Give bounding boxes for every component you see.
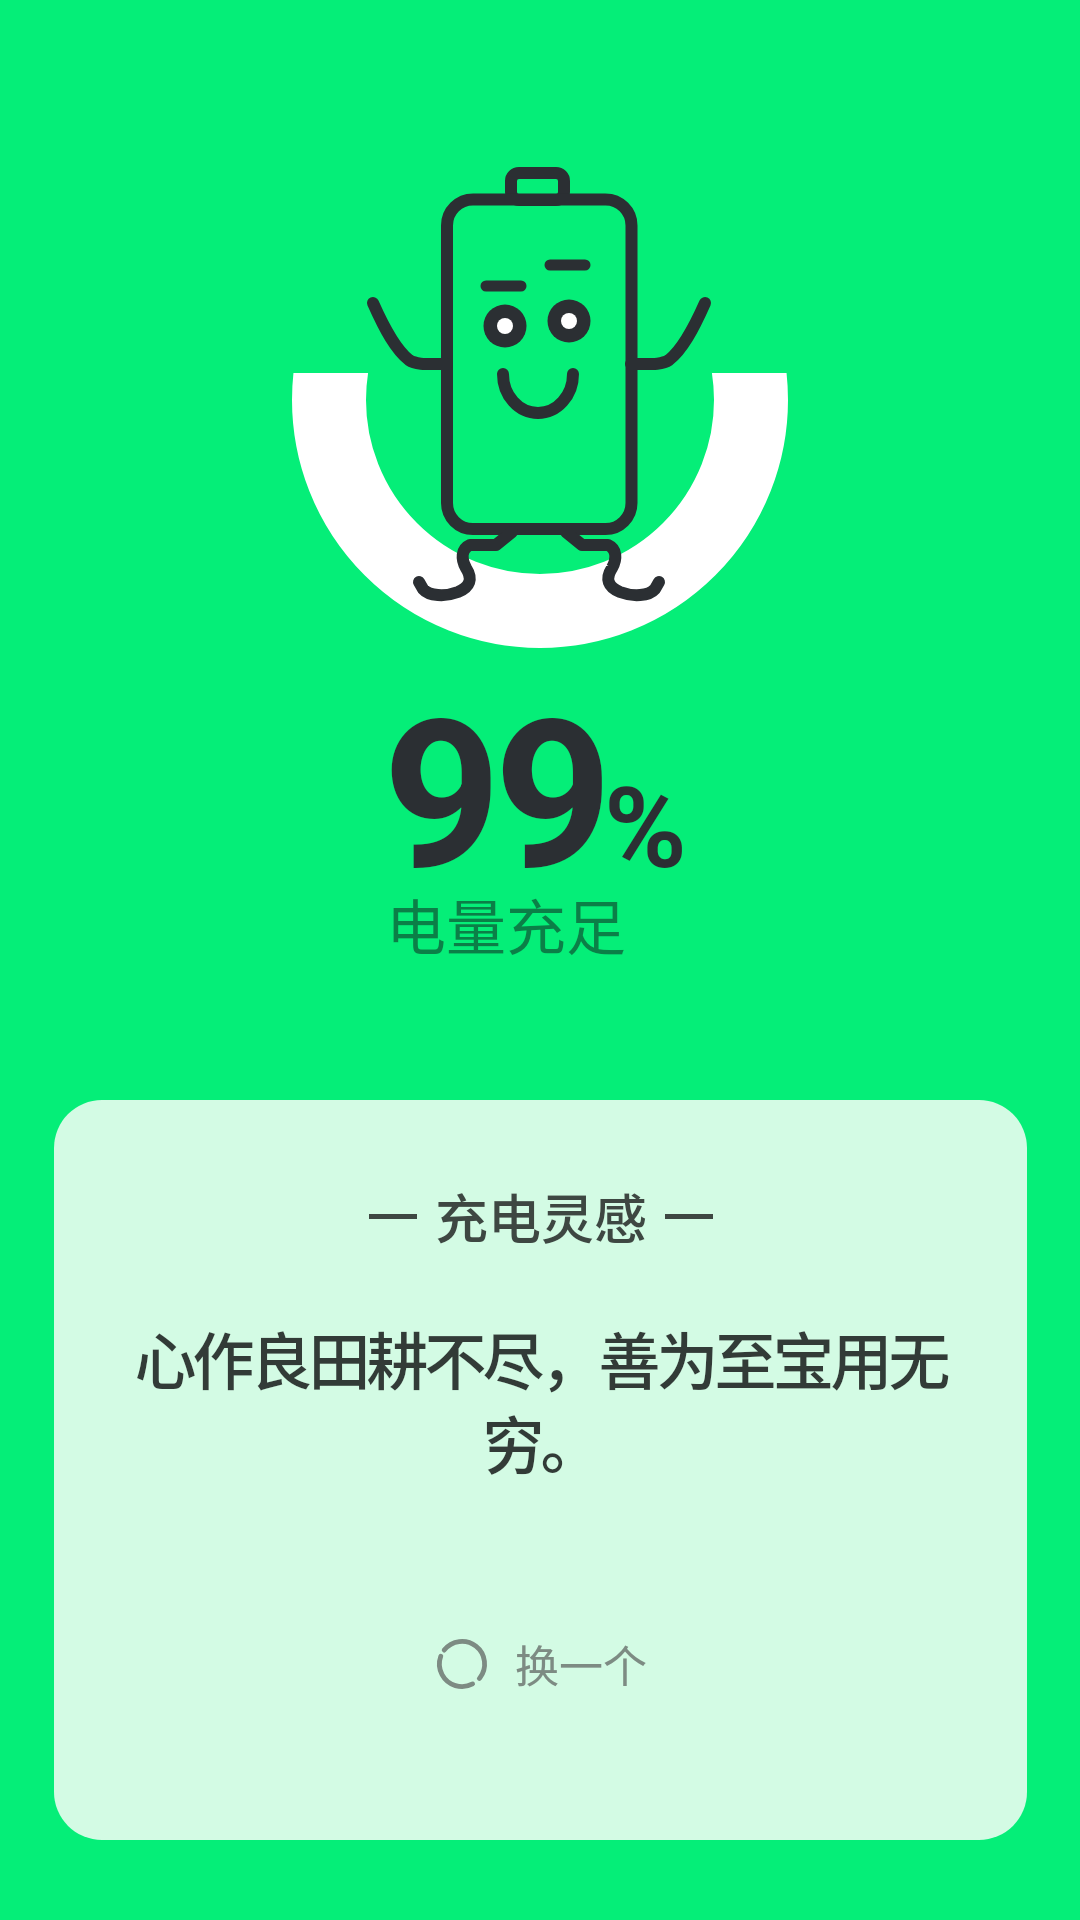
staticText: 心作良田耕不尽，善为至宝用无穷。 [84, 1313, 997, 1487]
staticText: 电量充足 [386, 880, 626, 967]
staticText: % [604, 763, 687, 894]
other: Refresh [435, 1637, 489, 1691]
staticText: 充电灵感 [435, 1178, 647, 1255]
button[interactable]: Refresh [421, 1624, 661, 1704]
staticText: 换一个 [515, 1632, 647, 1696]
staticText: 99 [383, 676, 606, 917]
